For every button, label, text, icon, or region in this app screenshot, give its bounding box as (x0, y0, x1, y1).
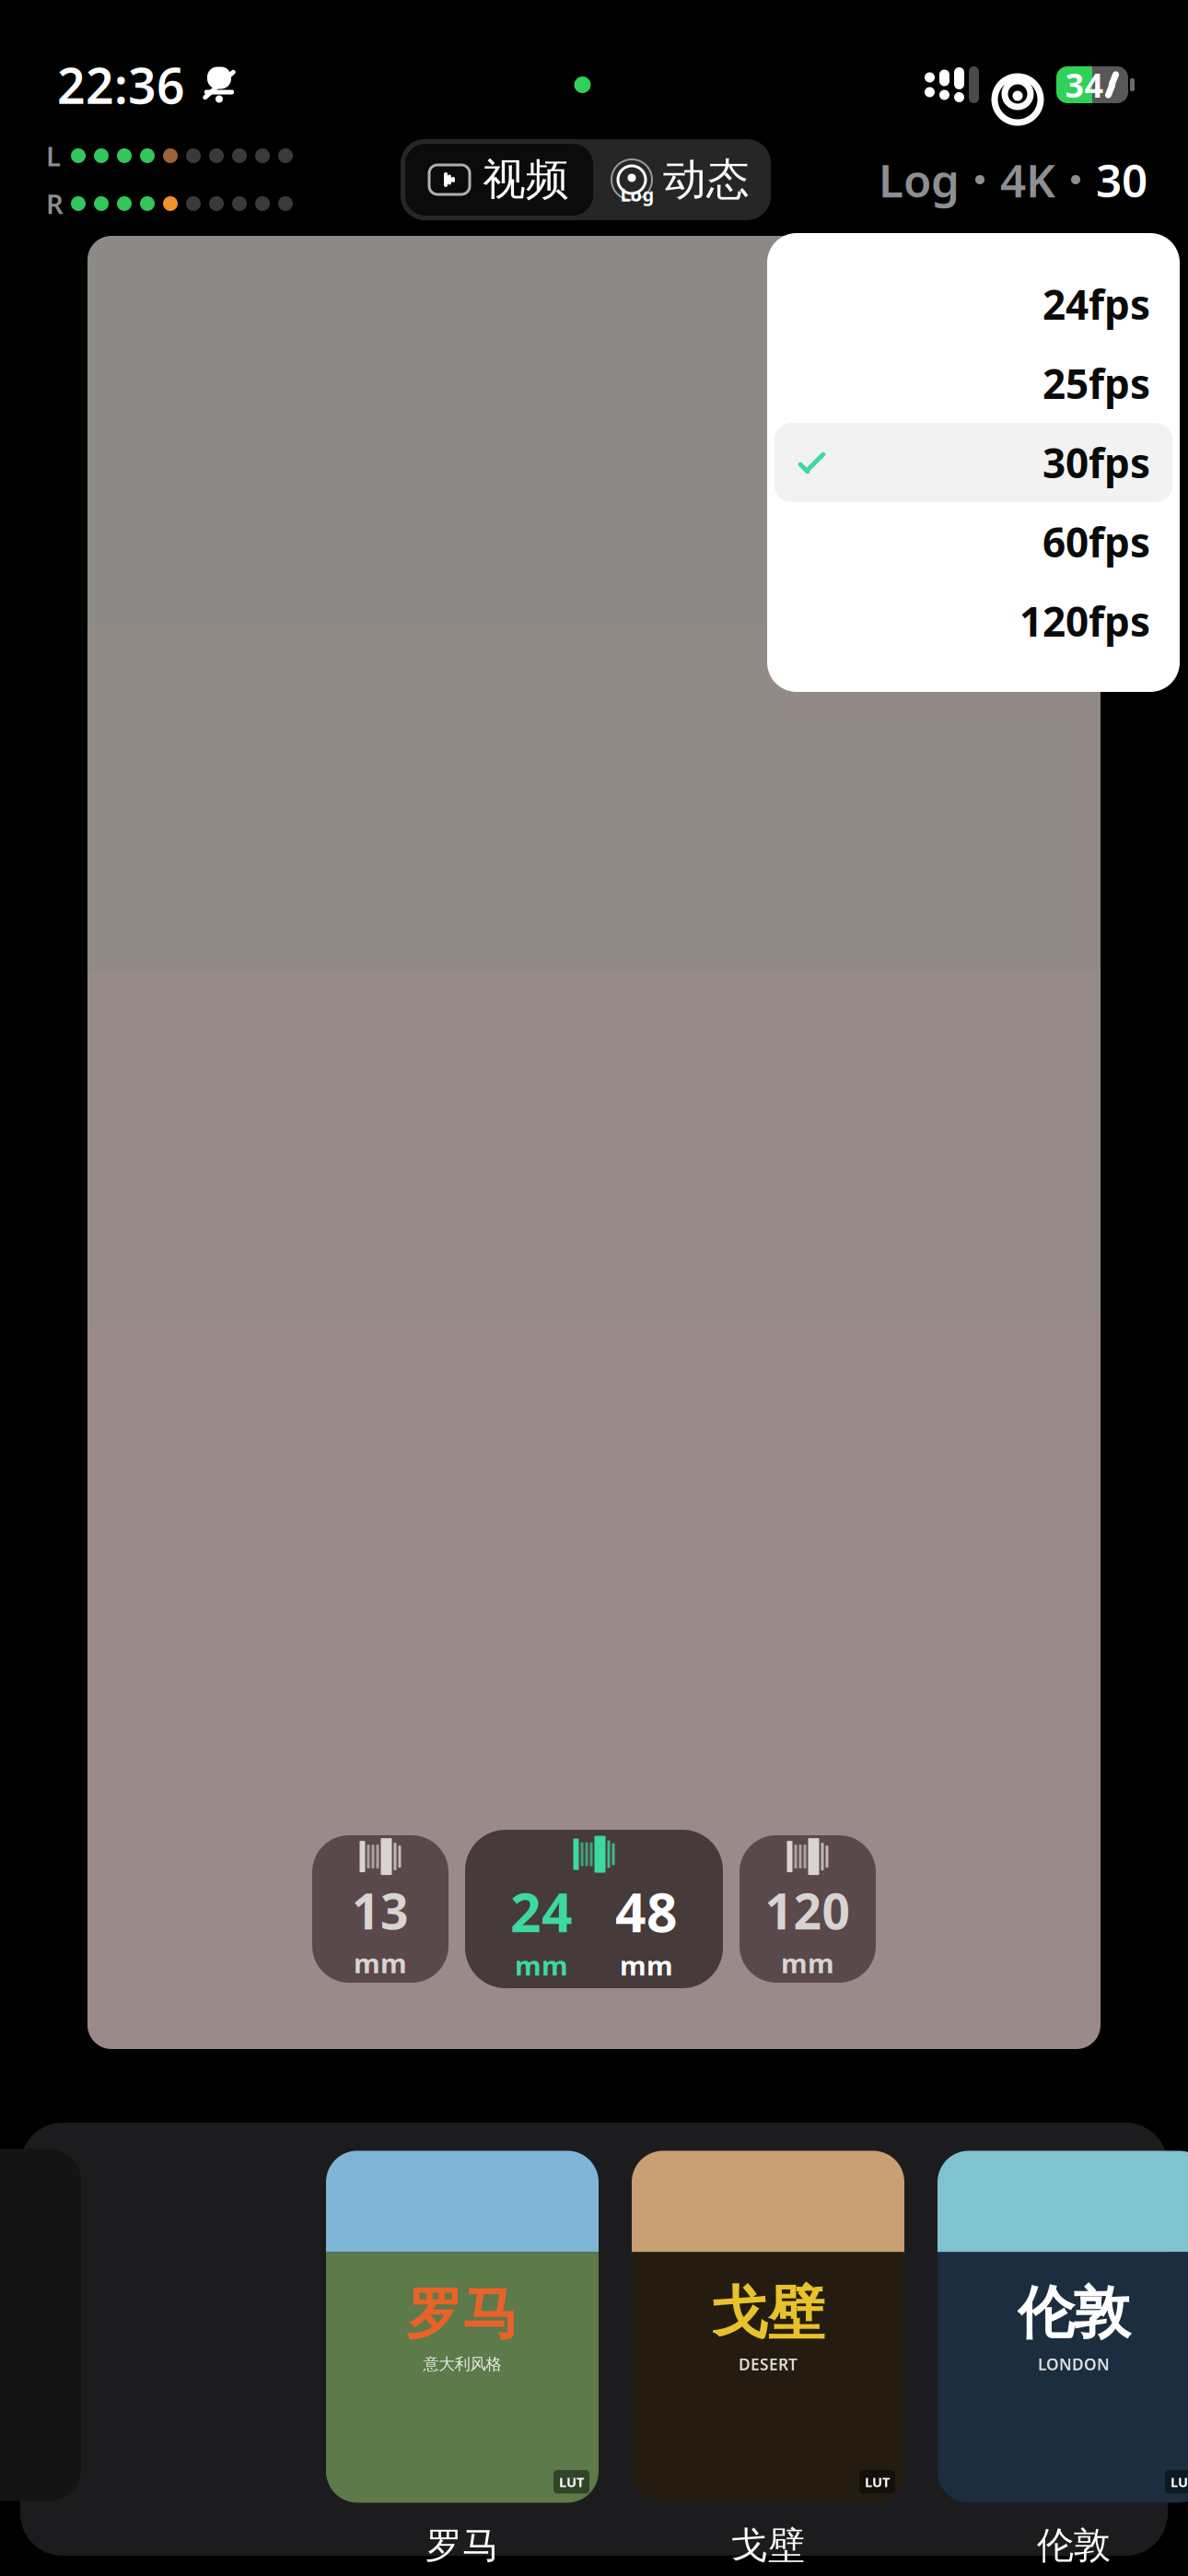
staticText: 48 (615, 1875, 678, 1947)
staticText: 120 (765, 1878, 850, 1943)
button[interactable]: Log (593, 144, 766, 216)
button[interactable]: 戈壁 (632, 2151, 904, 2568)
staticText: 30fps (1042, 436, 1150, 489)
button[interactable]: 视频 (405, 144, 593, 216)
staticText: 24 (510, 1875, 573, 1947)
staticText: Log (620, 182, 654, 207)
staticText: LUT (1171, 2473, 1188, 2491)
button[interactable]: 120fps (775, 581, 1172, 661)
button[interactable]: 120 (740, 1835, 876, 1983)
button[interactable]: 24 (465, 1830, 723, 1988)
button[interactable]: 罗马 (326, 2151, 599, 2568)
staticText: 意大利风格 (423, 2354, 501, 2374)
staticText: 罗马 (406, 2279, 518, 2349)
staticText: 30 (1096, 149, 1147, 210)
staticText: L (46, 138, 61, 174)
staticText: mm (515, 1947, 568, 1983)
staticText: 伦敦 (1018, 2279, 1130, 2348)
staticText: DESERT (739, 2354, 798, 2375)
staticText: mm (781, 1945, 834, 1981)
staticText: 戈壁 (731, 2523, 805, 2568)
staticText: R (46, 186, 64, 222)
staticText: 视频 (483, 153, 569, 206)
staticText: 24fps (1042, 277, 1150, 331)
staticText: mm (354, 1945, 407, 1981)
staticText: 34 (1065, 63, 1104, 107)
button[interactable]: 伦敦 (938, 2151, 1188, 2568)
staticText: 4K (1000, 149, 1055, 210)
staticText: 120fps (1019, 594, 1150, 648)
button[interactable]: 25fps (775, 344, 1172, 423)
staticText: mm (620, 1947, 673, 1983)
staticText: LUT (559, 2473, 584, 2491)
button[interactable]: 30 (1096, 149, 1147, 210)
staticText: LUT (865, 2473, 890, 2491)
staticText: 动态 (663, 153, 750, 206)
button[interactable]: 30fps (775, 423, 1172, 502)
button[interactable]: 13 (312, 1835, 448, 1983)
staticText: 22:36 (57, 52, 185, 117)
button[interactable]: 4K (1000, 149, 1055, 210)
button[interactable]: Log (879, 149, 960, 210)
staticText: 伦敦 (1037, 2523, 1111, 2568)
button[interactable]: 60fps (775, 502, 1172, 581)
staticText: 13 (352, 1878, 409, 1943)
button[interactable]: 24fps (775, 264, 1172, 344)
staticText: 25fps (1042, 356, 1150, 410)
staticText: 罗马 (425, 2523, 499, 2568)
staticText: Log (879, 149, 960, 210)
staticText: 60fps (1042, 515, 1150, 569)
staticText: LONDON (1038, 2354, 1110, 2375)
staticText: 戈壁 (712, 2279, 824, 2348)
